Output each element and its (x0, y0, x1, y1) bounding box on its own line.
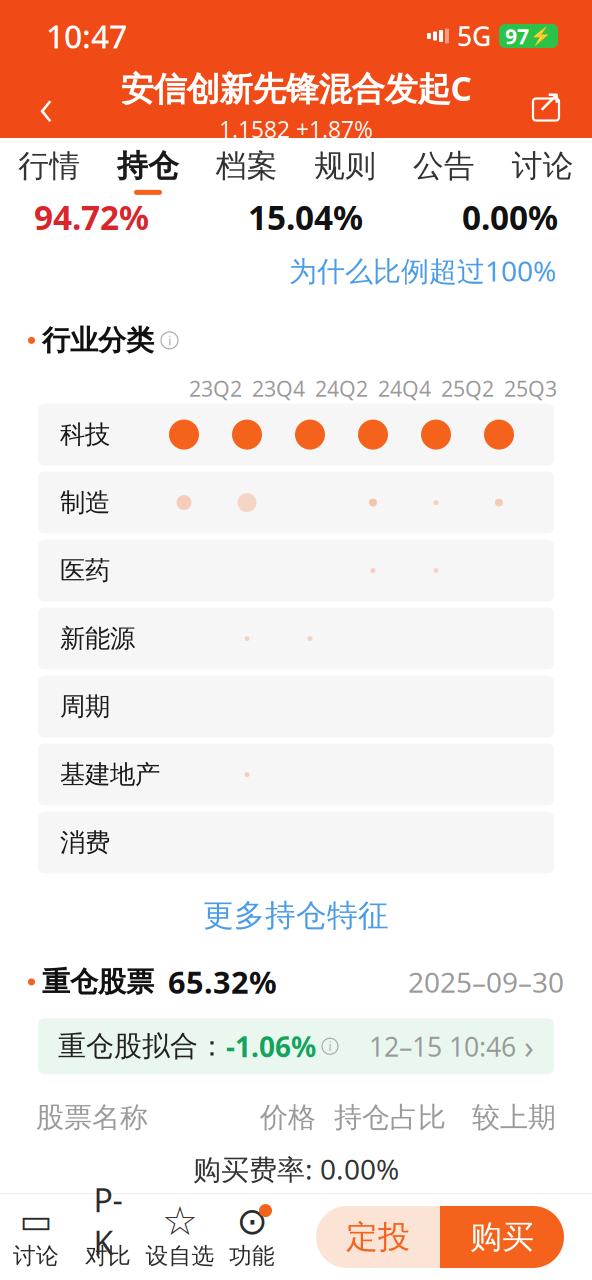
button[interactable]: 购买 (440, 1206, 564, 1268)
staticText: 0.00% (462, 195, 558, 239)
staticText: 10:47 (46, 15, 127, 57)
staticText: ☆ (162, 1198, 198, 1244)
staticText: 购买费率: 0.00% (193, 1150, 399, 1188)
staticText: 5G (457, 18, 491, 54)
staticText: 规则 (314, 147, 376, 185)
staticText: 消费 (60, 827, 110, 858)
button[interactable]: PK (72, 1200, 144, 1274)
staticText: 讨论 (512, 147, 574, 185)
staticText: 基建地产 (60, 759, 160, 790)
button[interactable]: 行情 (0, 138, 99, 204)
button[interactable]: 档案 (197, 138, 296, 204)
button[interactable]: 返回 (14, 73, 78, 137)
staticText: 重仓股票 (42, 965, 154, 999)
staticText: 对比 (85, 1242, 131, 1270)
staticText: 434.90 (217, 1179, 316, 1220)
staticText: 65.32% (168, 962, 277, 1002)
staticText: ↑ (470, 1186, 490, 1213)
staticText: 行业分类 (42, 323, 154, 358)
button[interactable]: 更多持仓特征 (0, 888, 592, 944)
staticText: › (524, 1025, 534, 1068)
staticText: 科技 (60, 419, 110, 450)
staticText: 94.72% (34, 195, 149, 239)
staticText: ⚡ (530, 26, 552, 46)
button[interactable]: 分享 (514, 73, 578, 137)
staticText: 较上期 (472, 1100, 556, 1135)
staticText: 价格 (260, 1100, 316, 1135)
staticText: i (168, 331, 171, 349)
staticText: i (328, 1038, 331, 1054)
staticText: 制造 (60, 487, 110, 518)
staticText: 新能源 (60, 623, 135, 654)
staticText: 23Q2 (189, 374, 242, 403)
button[interactable]: 公告 (395, 138, 493, 204)
staticText: 3.35% (493, 1159, 556, 1240)
button[interactable]: ▭ (0, 1200, 72, 1274)
staticText: 定投 (346, 1217, 410, 1257)
button[interactable]: 讨论 (493, 138, 592, 204)
staticText: 97 (505, 22, 529, 50)
staticText: PK (93, 1179, 122, 1264)
staticText: 12–15 10:46 (369, 1029, 516, 1064)
staticText: 行情 (18, 147, 80, 185)
button[interactable]: ⊙ (216, 1200, 288, 1274)
staticText: 新易盛 (36, 1181, 129, 1218)
staticText: 24Q4 (378, 374, 431, 403)
staticText: 为什么比例超过100% (289, 252, 556, 289)
staticText: 安信创新先锋混合发起C (120, 66, 471, 110)
staticText: 24Q2 (315, 374, 368, 403)
staticText: 25Q2 (441, 374, 494, 403)
staticText: 1.1582 +1.87% (219, 114, 373, 144)
staticText: 设自选 (145, 1242, 214, 1270)
button[interactable]: 定投 (316, 1206, 440, 1268)
staticText: ‹ (39, 70, 53, 140)
staticText: 周期 (60, 691, 110, 722)
staticText: 重仓股拟合： (58, 1029, 226, 1063)
button[interactable]: 规则 (296, 138, 395, 204)
staticText: 持仓 (117, 147, 179, 185)
staticText: ⊙ (236, 1200, 267, 1242)
staticText: 持仓占比 (334, 1100, 446, 1135)
staticText: 公告 (413, 147, 475, 185)
staticText: 15.04% (248, 195, 363, 239)
staticText: -1.06% (226, 1028, 316, 1065)
button[interactable]: ☆ (144, 1200, 216, 1274)
button[interactable]: 重仓股拟合： (38, 1018, 554, 1074)
staticText: 医药 (60, 555, 110, 586)
button[interactable]: 为什么比例超过100% (289, 252, 556, 289)
staticText: ↗ (536, 84, 562, 118)
staticText: 档案 (216, 147, 278, 185)
staticText: ▭ (19, 1201, 52, 1241)
button[interactable]: 持仓 (99, 138, 197, 204)
staticText: 更多持仓特征 (203, 897, 389, 934)
staticText: 讨论 (13, 1242, 59, 1270)
staticText: 23Q4 (252, 374, 305, 403)
staticText: 功能 (229, 1242, 275, 1270)
staticText: 购买 (470, 1217, 534, 1257)
staticText: 2025–09–30 (408, 963, 564, 1000)
staticText: 25Q3 (504, 374, 557, 403)
staticText: 股票名称 (36, 1100, 148, 1135)
staticText: 9.61% (355, 1179, 446, 1220)
